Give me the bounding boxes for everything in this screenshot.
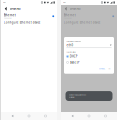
staticText: ETHERNET: [9, 7, 20, 10]
button[interactable]: Home: [24, 112, 34, 120]
staticText: Static IP: [70, 61, 80, 64]
staticText: Select IP settings: [66, 51, 76, 53]
button[interactable]: CANCEL: [98, 67, 106, 70]
staticText: Ethernet: [64, 13, 76, 17]
staticText: Configure Ethernet device: [4, 21, 41, 24]
staticText: Ethernet: [4, 13, 16, 17]
staticText: DHCP: [70, 55, 78, 58]
staticText: eth0: [66, 43, 73, 47]
button[interactable]: Recent apps: [40, 112, 50, 120]
button[interactable]: Back: [2, 5, 9, 12]
button[interactable]: Back: [67, 112, 77, 120]
staticText: An ethernet adapter is not: [68, 94, 85, 96]
staticText: Select Ethernet device: [66, 41, 81, 42]
button[interactable]: Ethernet: [61, 12, 117, 20]
button[interactable]: Recent apps: [100, 112, 110, 120]
staticText: Configure Ethernet device: [64, 21, 101, 24]
staticText: available: [68, 96, 74, 98]
staticText: ETHERNET: [69, 7, 80, 10]
button[interactable]: Home: [84, 112, 94, 120]
button[interactable]: Back: [62, 5, 69, 12]
button[interactable]: OK: [108, 67, 112, 70]
button[interactable]: Ethernet: [1, 12, 57, 20]
staticText: CANCEL: [99, 68, 105, 70]
staticText: Connected: [4, 17, 12, 19]
staticText: OK: [109, 68, 111, 70]
button[interactable]: Back: [7, 112, 17, 120]
staticText: 9:41: [3, 2, 6, 3]
staticText: 9:41: [63, 2, 66, 3]
